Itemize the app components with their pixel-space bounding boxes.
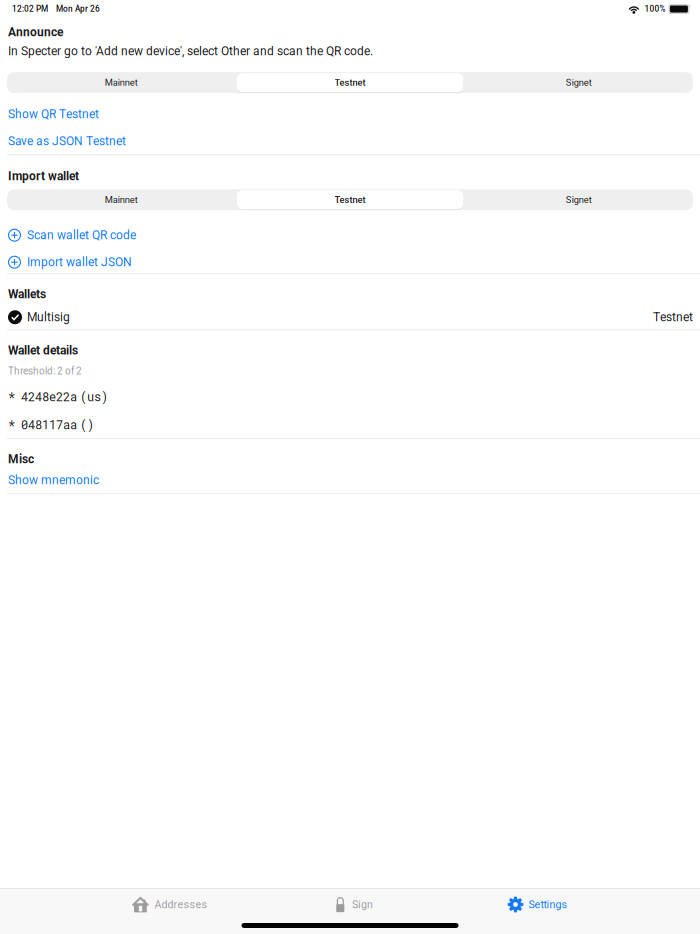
staticText: 4248e22a bbox=[21, 389, 77, 404]
staticText: Import wallet bbox=[8, 169, 79, 183]
staticText: 12:02 PM bbox=[12, 4, 48, 14]
button[interactable]: Show mnemonic bbox=[0, 471, 700, 489]
staticText: Threshold: 2 of 2 bbox=[8, 365, 82, 377]
staticText: Save as JSON Testnet bbox=[8, 134, 126, 148]
staticText: Testnet bbox=[334, 194, 365, 205]
staticText: Announce bbox=[8, 25, 63, 39]
staticText: 100% bbox=[644, 4, 665, 14]
staticText: Sign bbox=[352, 898, 373, 911]
staticText: Scan wallet QR code bbox=[27, 228, 136, 242]
button[interactable]: Testnet bbox=[236, 72, 464, 93]
staticText: Misc bbox=[8, 452, 34, 466]
button[interactable]: Mainnet bbox=[7, 189, 236, 210]
button[interactable]: Multisig bbox=[0, 308, 700, 326]
staticText: Settings bbox=[528, 898, 567, 911]
staticText: Addresses bbox=[154, 898, 207, 911]
staticText: Signet bbox=[566, 194, 592, 205]
button[interactable]: Signet bbox=[464, 72, 693, 93]
button[interactable]: Testnet bbox=[236, 189, 464, 210]
staticText: Import wallet JSON bbox=[27, 255, 132, 269]
staticText: * bbox=[8, 417, 15, 432]
staticText: (us) bbox=[80, 389, 108, 404]
button[interactable]: Show QR Testnet bbox=[0, 105, 700, 123]
staticText: Show QR Testnet bbox=[8, 107, 99, 121]
staticText: Mon Apr 26 bbox=[56, 4, 100, 14]
button[interactable]: Save as JSON Testnet bbox=[0, 132, 700, 150]
staticText: In Specter go to 'Add new device', selec… bbox=[8, 44, 373, 58]
staticText: Testnet bbox=[653, 310, 693, 324]
button[interactable]: Mainnet bbox=[7, 72, 236, 93]
staticText: Testnet bbox=[334, 77, 365, 88]
staticText: () bbox=[80, 417, 94, 432]
staticText: Mainnet bbox=[105, 77, 138, 88]
staticText: Show mnemonic bbox=[8, 473, 99, 487]
staticText: Multisig bbox=[27, 310, 70, 324]
button[interactable]: Sign bbox=[261, 889, 445, 920]
button[interactable]: Scan wallet QR code bbox=[0, 226, 700, 244]
button[interactable]: Signet bbox=[464, 189, 693, 210]
button[interactable]: Settings bbox=[445, 889, 629, 920]
staticText: * bbox=[8, 389, 15, 404]
staticText: Signet bbox=[566, 77, 592, 88]
staticText: 048117aa bbox=[21, 417, 77, 432]
staticText: Wallet details bbox=[8, 343, 78, 357]
staticText: Wallets bbox=[8, 287, 46, 301]
button[interactable]: Addresses bbox=[77, 889, 261, 920]
button[interactable]: Import wallet JSON bbox=[0, 253, 700, 271]
staticText: Mainnet bbox=[105, 194, 138, 205]
